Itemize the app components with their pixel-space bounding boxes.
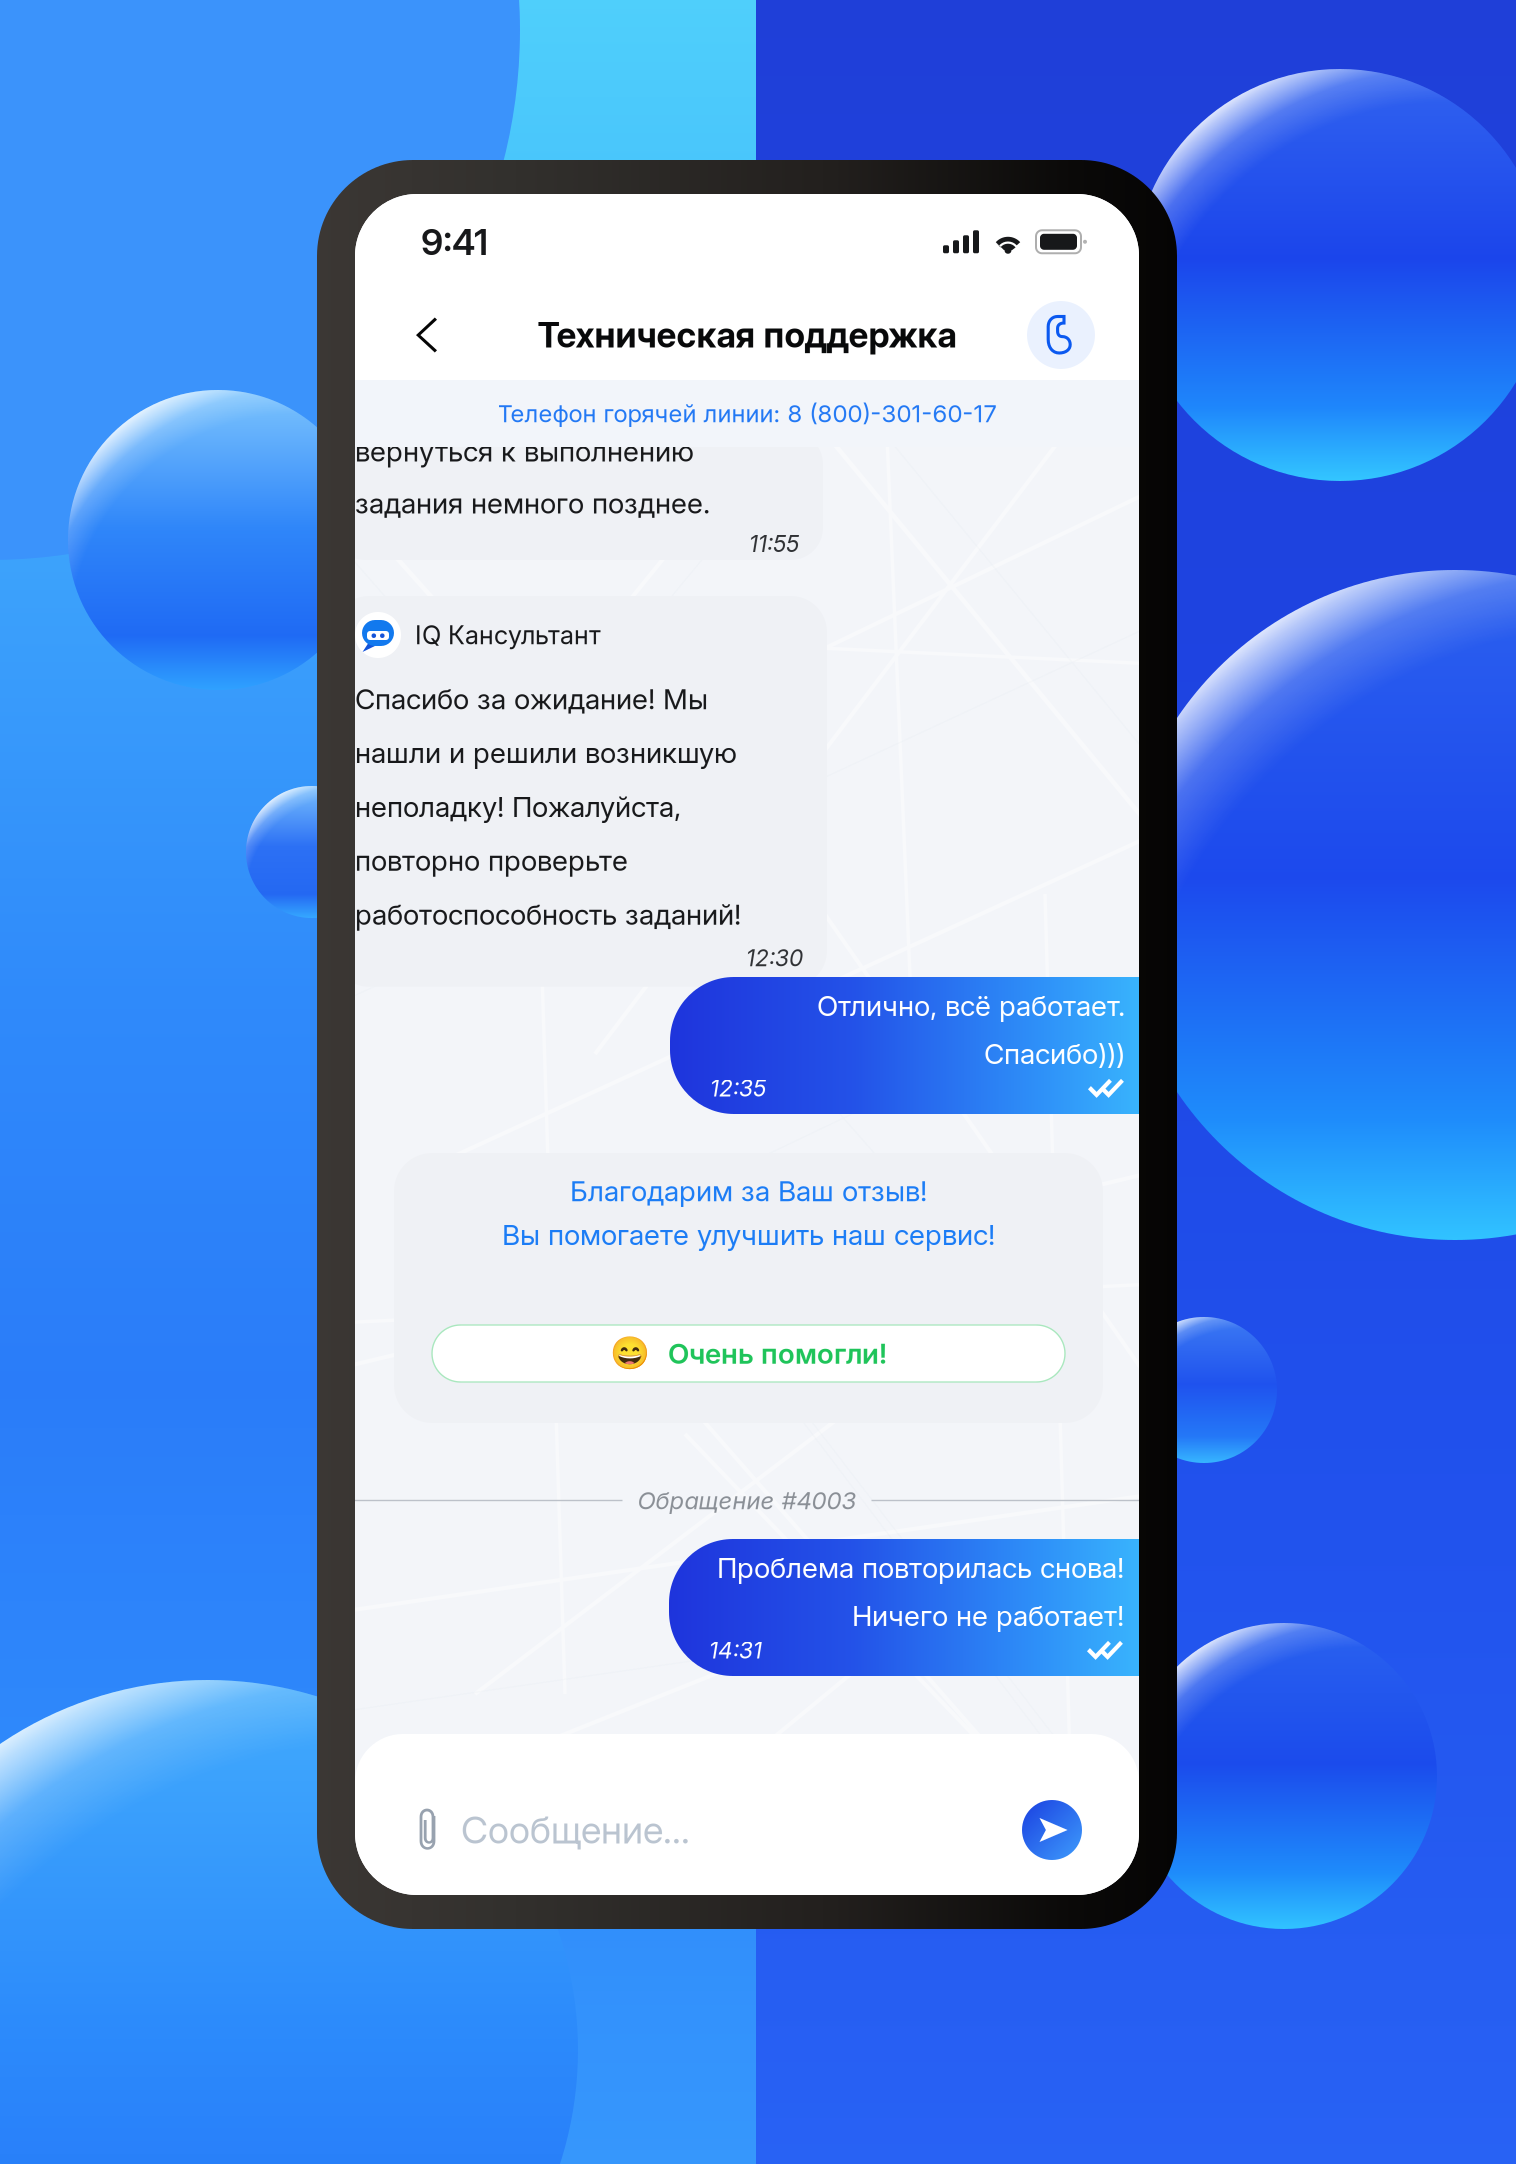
staticText: нашли и решили возникшую xyxy=(355,736,737,770)
staticText: 12:35 xyxy=(710,1075,766,1102)
staticText: вернуться к выполнению xyxy=(355,434,694,468)
staticText: 14:31 xyxy=(709,1637,762,1664)
staticText: Спасибо за ожидание! Мы xyxy=(355,682,708,716)
staticText: Вы помогаете улучшить наш сервис! xyxy=(502,1218,995,1252)
staticText: Телефон горячей линии: 8 (800)-301-60-17 xyxy=(497,399,996,428)
button[interactable]: 😄 xyxy=(432,1325,1065,1382)
staticText: работоспособность заданий! xyxy=(355,897,741,931)
staticText: Отлично, всё работает. xyxy=(817,989,1125,1023)
staticText: 11:55 xyxy=(749,530,799,558)
staticText: 😄 xyxy=(610,1335,650,1372)
staticText: неполадку! Пожалуйста, xyxy=(355,790,681,824)
staticText: 9:41 xyxy=(421,220,488,264)
button[interactable]: Телефон горячей линии: 8 (800)-301-60-17 xyxy=(355,380,1139,447)
staticText: задания немного позднее. xyxy=(355,486,710,520)
staticText: Сообщение... xyxy=(461,1807,690,1853)
staticText: Благодарим за Ваш отзыв! xyxy=(570,1174,927,1208)
button[interactable]: Назад xyxy=(355,291,467,378)
button[interactable]: Позвонить xyxy=(1011,290,1139,380)
staticText: IQ Кансультант xyxy=(415,620,601,650)
button[interactable]: Прикрепить файл xyxy=(355,1785,461,1875)
staticText: Проблема повторилась снова! xyxy=(717,1551,1124,1585)
staticText: Спасибо))) xyxy=(984,1037,1125,1071)
staticText: 12:30 xyxy=(746,944,803,972)
staticText: Очень помогли! xyxy=(668,1337,887,1370)
staticText: повторно проверьте xyxy=(355,844,628,877)
staticText: Ничего не работает! xyxy=(852,1599,1124,1633)
button[interactable]: Отправить xyxy=(1008,1784,1139,1876)
staticText: Обращение #4003 xyxy=(637,1486,856,1515)
staticText: Техническая поддержка xyxy=(537,314,956,356)
